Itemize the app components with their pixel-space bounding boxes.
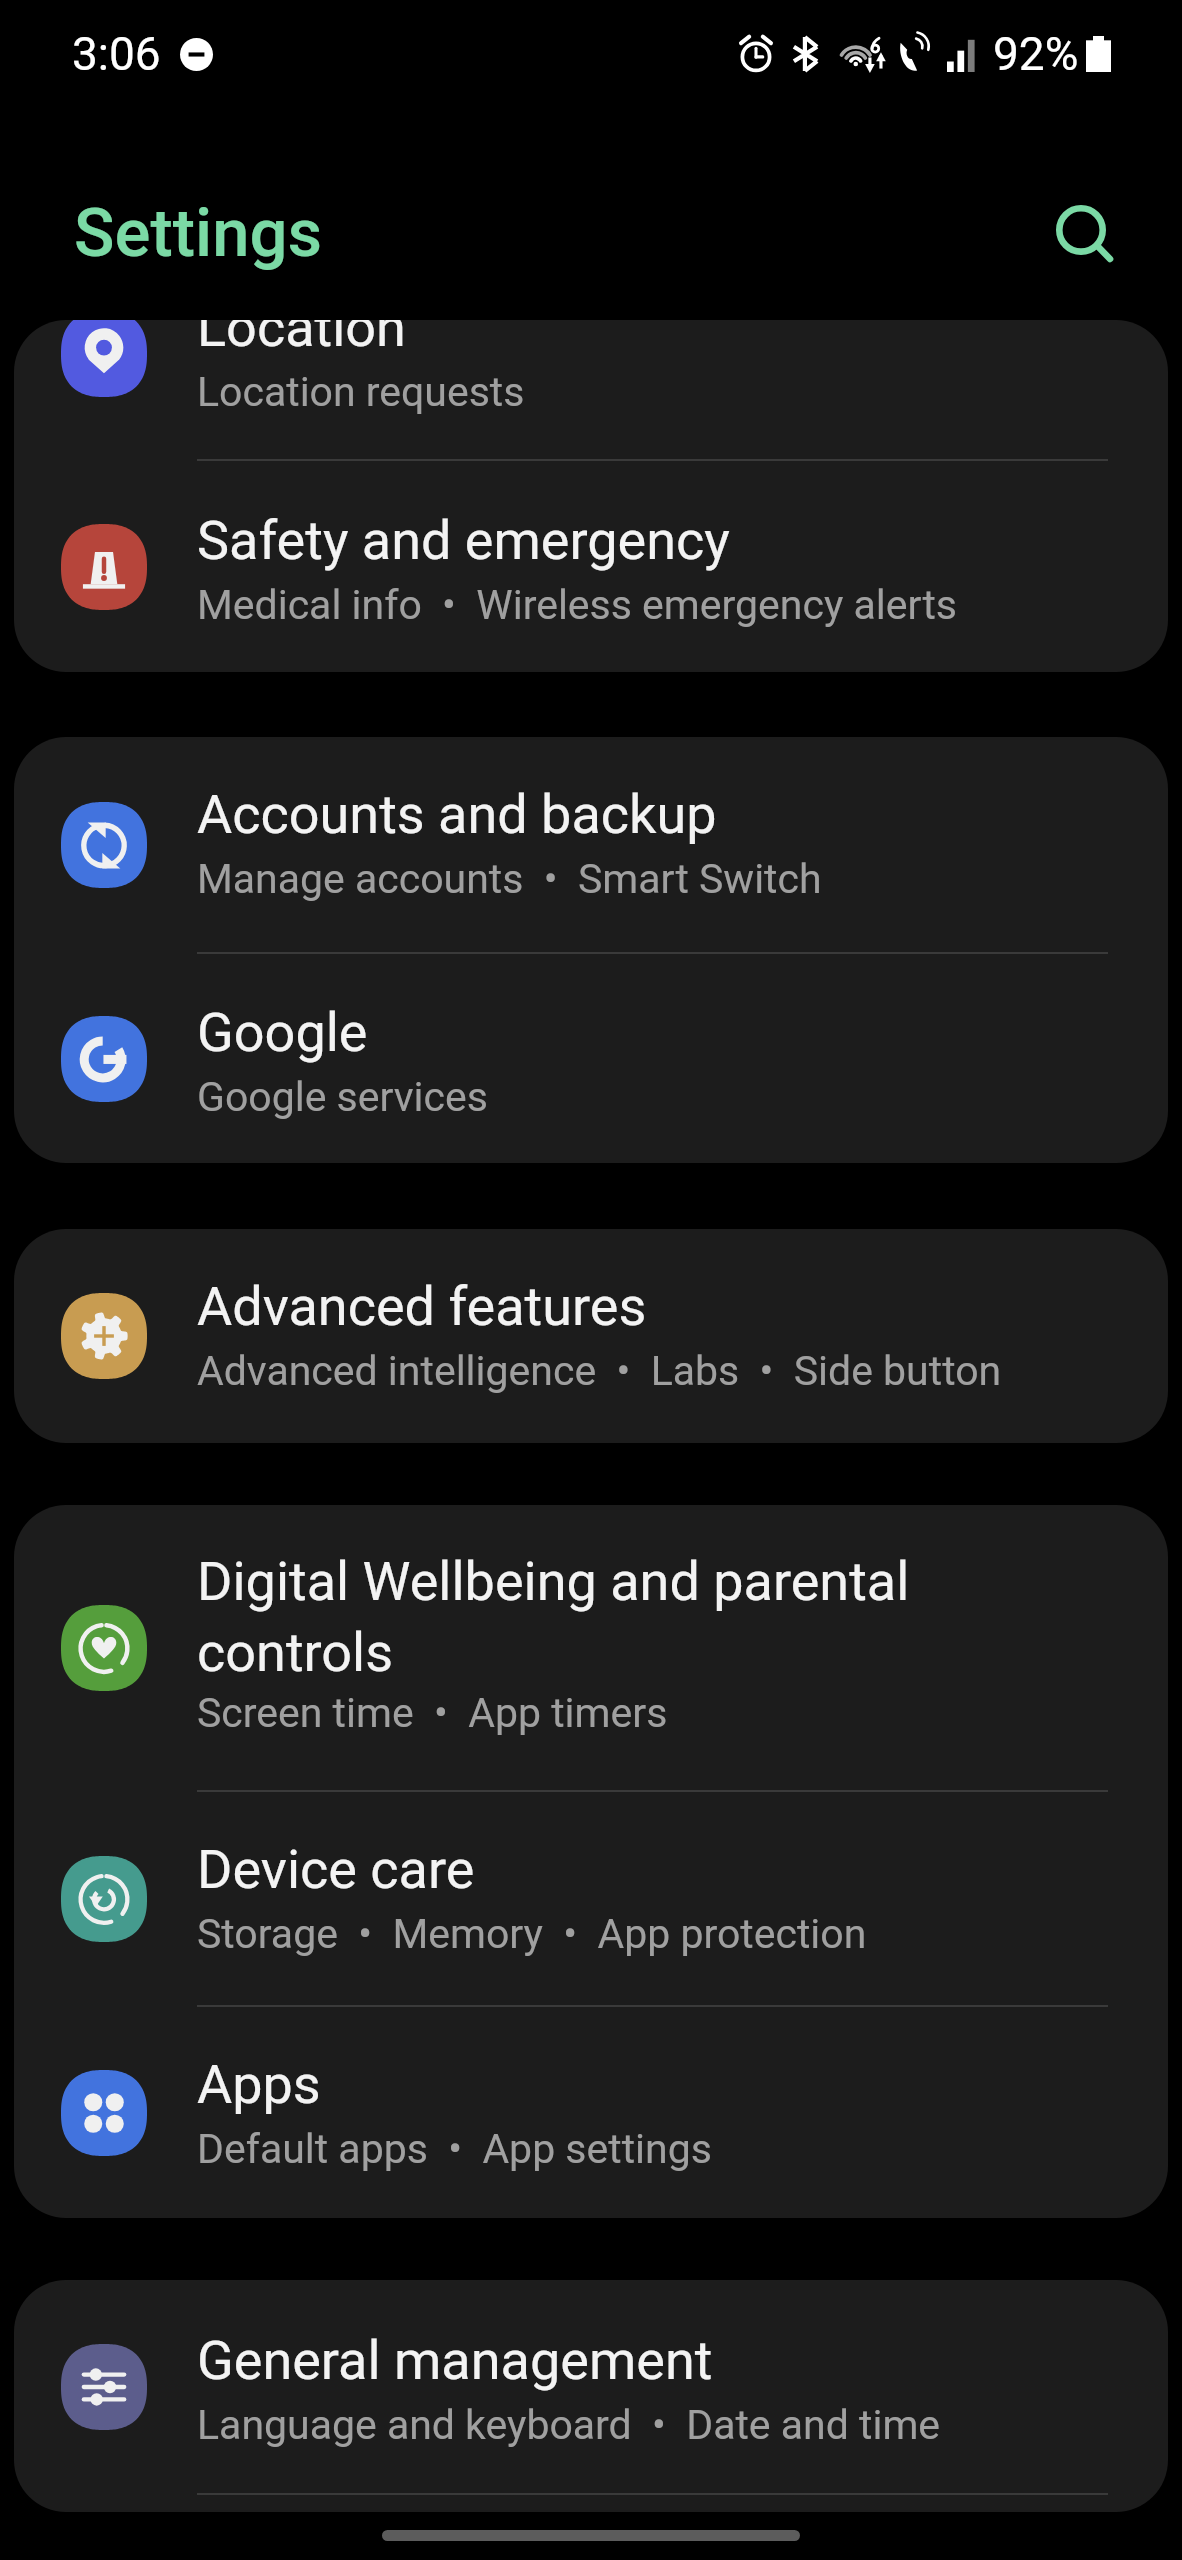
staticText: Safety and emergency [197, 509, 730, 572]
staticText: Storage • Memory • App protection [197, 1910, 867, 1958]
staticText: Google services [197, 1073, 488, 1121]
staticText: Digital Wellbeing and parental controls [197, 1550, 937, 1684]
staticText: Default apps • App settings [197, 2125, 712, 2173]
staticText: Medical info • Wireless emergency alerts [197, 581, 957, 629]
staticText: Google [197, 1001, 368, 1064]
button[interactable]: Location [14, 320, 1168, 459]
button[interactable]: Google [14, 954, 1168, 1163]
staticText: Advanced intelligence • Labs • Side butt… [197, 1347, 1002, 1395]
staticText: Location requests [197, 368, 525, 416]
button[interactable]: Accounts and backup [14, 737, 1168, 952]
staticText: Settings [74, 194, 323, 273]
staticText: Advanced features [197, 1275, 647, 1338]
button[interactable]: Device care [14, 1792, 1168, 2005]
button[interactable]: Apps [14, 2007, 1168, 2218]
button[interactable]: Safety and emergency [14, 461, 1168, 672]
staticText: Apps [197, 2053, 321, 2116]
staticText: Accounts and backup [197, 783, 717, 846]
button[interactable]: Advanced features [14, 1229, 1168, 1443]
staticText: Device care [197, 1838, 475, 1901]
button[interactable]: General management [14, 2280, 1168, 2493]
staticText: General management [197, 2329, 713, 2392]
button[interactable]: Search [1029, 179, 1147, 297]
staticText: Language and keyboard • Date and time [197, 2401, 941, 2449]
staticText: 3:06 [72, 27, 161, 81]
staticText: 92% [993, 27, 1079, 81]
staticText: Screen time • App timers [197, 1689, 668, 1737]
button[interactable]: Digital Wellbeing and parental controls [14, 1505, 1168, 1790]
staticText: Location [197, 320, 406, 359]
staticText: Manage accounts • Smart Switch [197, 855, 822, 903]
